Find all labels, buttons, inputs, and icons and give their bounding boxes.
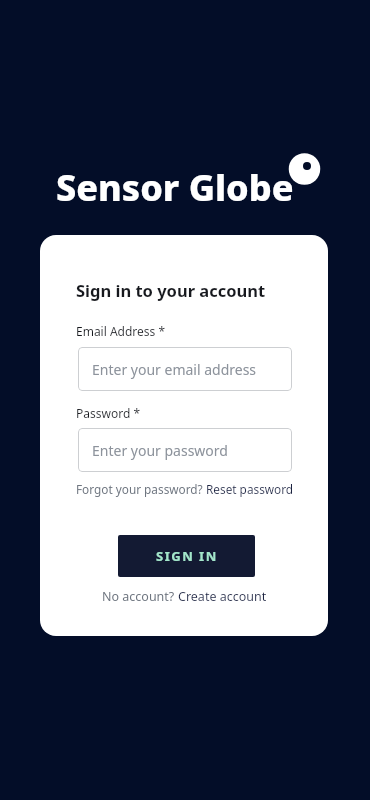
staticText: Forgot your password? (76, 481, 206, 497)
staticText: No account? (102, 588, 178, 605)
staticText: Sign in to your account (76, 279, 266, 301)
staticText: SIGN IN (156, 547, 218, 565)
button[interactable]: Enter your email address (78, 347, 292, 391)
staticText: Sensor Globe (56, 163, 294, 212)
button[interactable]: Enter your password (78, 428, 292, 472)
button[interactable]: SIGN IN (118, 535, 255, 577)
staticText: Enter your email address (92, 360, 257, 379)
staticText: Email Address * (76, 323, 166, 339)
staticText: Password * (76, 405, 141, 421)
button[interactable]: Reset password (206, 481, 294, 497)
button[interactable]: Create account (178, 588, 267, 605)
staticText: Enter your password (92, 441, 228, 460)
